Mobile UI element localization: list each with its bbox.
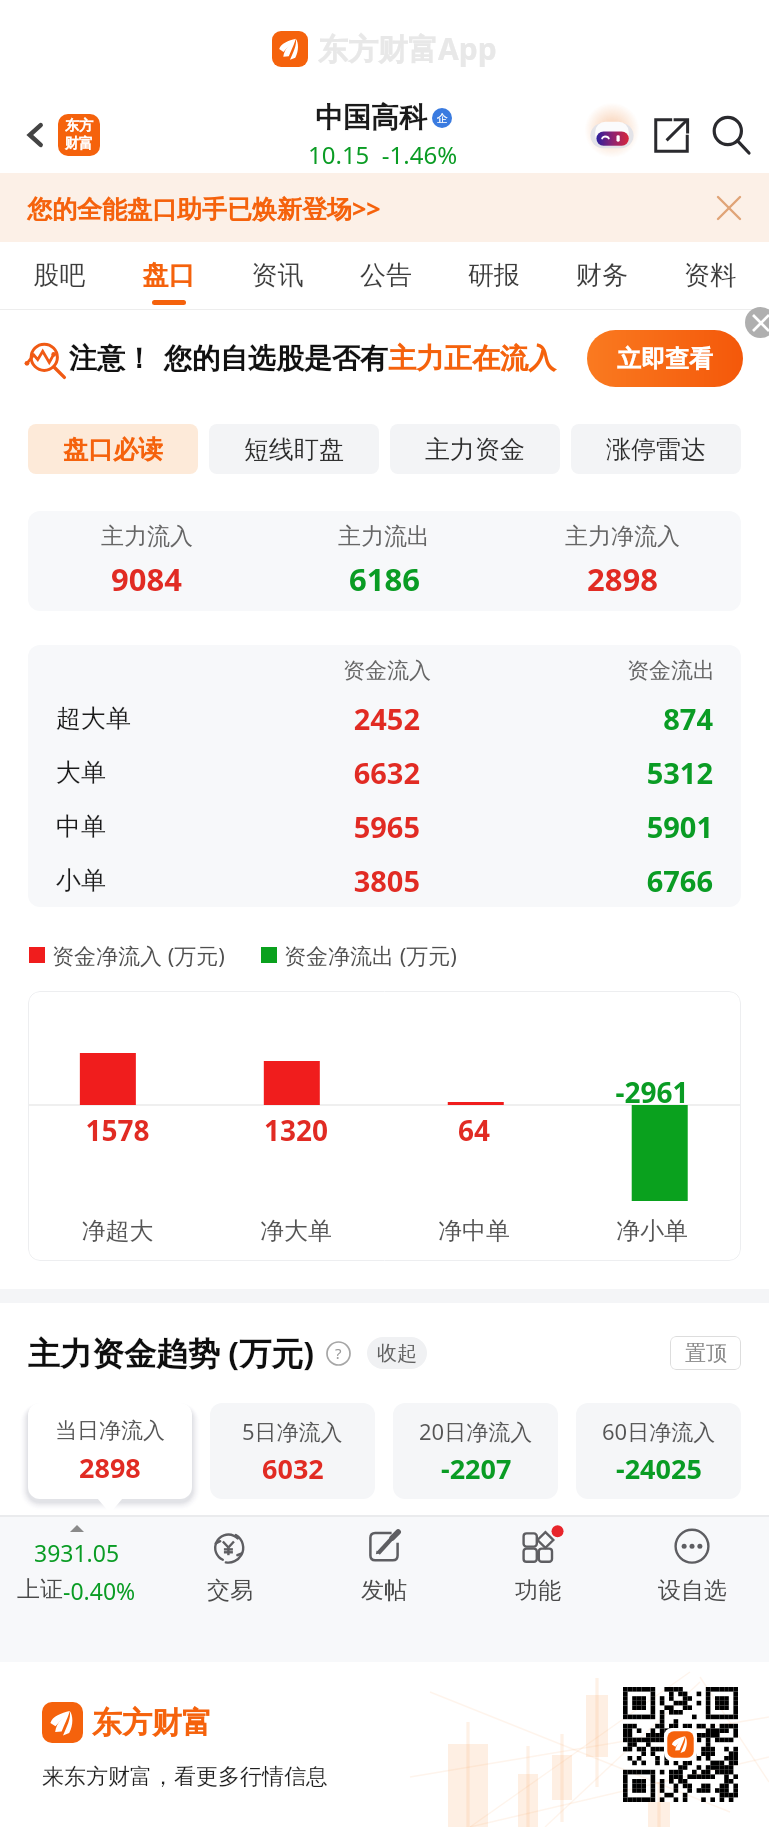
staticText: -2961 bbox=[563, 1073, 741, 1111]
staticText: 5965 bbox=[300, 807, 420, 846]
staticText: 交易 bbox=[207, 1576, 253, 1605]
staticText: 10.15 -1.46% bbox=[308, 138, 458, 171]
staticText: -0.40% bbox=[63, 1575, 136, 1606]
button[interactable]: 盘口 bbox=[114, 242, 223, 310]
staticText: 2452 bbox=[300, 699, 420, 738]
staticText: 当日净流入 bbox=[55, 1417, 165, 1445]
staticText: 小单 bbox=[56, 865, 300, 896]
staticText: 净小单 bbox=[563, 1216, 741, 1246]
button[interactable]: 发帖 bbox=[307, 1517, 461, 1662]
button[interactable]: 5日净流入 bbox=[210, 1403, 375, 1499]
button[interactable]: 设自选 bbox=[615, 1517, 769, 1662]
staticText: 短线盯盘 bbox=[244, 434, 344, 465]
button[interactable]: 3931.05 bbox=[0, 1517, 153, 1662]
button[interactable]: 研报 bbox=[440, 242, 548, 310]
staticText: 立即查看 bbox=[617, 344, 713, 374]
staticText: 研报 bbox=[440, 259, 548, 292]
staticText: 20日净流入 bbox=[419, 1416, 533, 1446]
staticText: 6032 bbox=[262, 1450, 324, 1487]
button[interactable]: 立即查看 bbox=[587, 330, 743, 387]
staticText: 6186 bbox=[349, 558, 420, 600]
staticText: 超大单 bbox=[56, 703, 300, 734]
button[interactable]: 股吧 bbox=[5, 242, 114, 310]
staticText: 资金净流出 (万元) bbox=[284, 940, 457, 970]
staticText: 东方 bbox=[65, 117, 93, 135]
staticText: 资料 bbox=[656, 259, 764, 292]
button[interactable]: Close bbox=[709, 188, 749, 228]
staticText: 3805 bbox=[300, 861, 420, 900]
staticText: 公告 bbox=[332, 259, 440, 292]
staticText: 2898 bbox=[587, 558, 658, 600]
staticText: 设自选 bbox=[658, 1576, 727, 1605]
staticText: 财富 bbox=[65, 135, 93, 153]
staticText: 874 bbox=[420, 699, 713, 738]
staticText: 6632 bbox=[300, 753, 420, 792]
staticText: 置顶 bbox=[685, 1340, 727, 1366]
staticText: 大单 bbox=[56, 757, 300, 788]
staticText: 1320 bbox=[207, 1111, 385, 1149]
staticText: 盘口必读 bbox=[63, 434, 163, 465]
staticText: 1578 bbox=[28, 1111, 207, 1149]
staticText: 您的全能盘口助手已焕新登场>> bbox=[27, 191, 381, 225]
staticText: 企 bbox=[437, 111, 448, 125]
button[interactable]: AI assistant bbox=[582, 105, 642, 165]
button[interactable]: Back bbox=[14, 113, 58, 157]
staticText: 资讯 bbox=[223, 259, 332, 292]
staticText: 5901 bbox=[420, 807, 713, 846]
button[interactable]: 短线盯盘 bbox=[209, 424, 379, 474]
staticText: 中单 bbox=[56, 811, 300, 842]
staticText: 64 bbox=[385, 1111, 563, 1149]
staticText: 上证 bbox=[17, 1575, 63, 1604]
staticText: 3931.05 bbox=[34, 1537, 120, 1568]
staticText: 主力流入 bbox=[101, 522, 193, 551]
staticText: ? bbox=[335, 1343, 342, 1363]
staticText: 5日净流入 bbox=[242, 1416, 343, 1446]
staticText: 注意！ bbox=[69, 341, 153, 376]
button[interactable]: 功能 bbox=[461, 1517, 615, 1662]
staticText: 收起 bbox=[377, 1341, 417, 1366]
button[interactable]: 当日净流入 bbox=[28, 1403, 192, 1499]
button[interactable]: 财务 bbox=[548, 242, 656, 310]
button[interactable]: 您的全能盘口助手已焕新登场>> bbox=[0, 173, 769, 242]
button[interactable]: 资讯 bbox=[223, 242, 332, 310]
button[interactable]: 20日净流入 bbox=[393, 1403, 558, 1499]
staticText: 60日净流入 bbox=[602, 1416, 716, 1446]
button[interactable]: 置顶 bbox=[670, 1336, 741, 1370]
button[interactable]: 交易 bbox=[153, 1517, 307, 1662]
staticText: 来东方财富，看更多行情信息 bbox=[42, 1763, 328, 1791]
staticText: 功能 bbox=[515, 1576, 561, 1605]
staticText: 资金净流入 (万元) bbox=[52, 940, 225, 970]
staticText: 您的自选股是否有 bbox=[164, 341, 388, 376]
button[interactable]: Help bbox=[325, 1340, 351, 1366]
staticText: -2207 bbox=[441, 1450, 512, 1487]
staticText: 财务 bbox=[548, 259, 656, 292]
button[interactable]: 盘口必读 bbox=[28, 424, 198, 474]
staticText: 净大单 bbox=[207, 1216, 385, 1246]
staticText: 主力净流入 bbox=[565, 522, 680, 551]
staticText: 东方财富 bbox=[92, 1704, 212, 1742]
staticText: 6766 bbox=[420, 861, 713, 900]
staticText: 资金流入 bbox=[311, 657, 431, 685]
staticText: 发帖 bbox=[361, 1576, 407, 1605]
staticText: 5312 bbox=[420, 753, 713, 792]
staticText: 中国高科 bbox=[315, 100, 427, 135]
staticText: 东方财富App bbox=[318, 28, 497, 69]
staticText: 涨停雷达 bbox=[606, 434, 706, 465]
staticText: 资金流出 bbox=[422, 657, 715, 685]
button[interactable]: 收起 bbox=[367, 1337, 427, 1369]
staticText: 主力流出 bbox=[338, 522, 430, 551]
button[interactable]: 资料 bbox=[656, 242, 764, 310]
staticText: 9084 bbox=[111, 558, 182, 600]
button[interactable]: Search bbox=[707, 111, 755, 159]
staticText: -24025 bbox=[616, 1450, 702, 1487]
button[interactable]: Share bbox=[647, 111, 695, 159]
button[interactable]: 涨停雷达 bbox=[571, 424, 741, 474]
button[interactable]: 主力资金 bbox=[390, 424, 560, 474]
staticText: 主力资金 bbox=[425, 434, 525, 465]
staticText: 净超大 bbox=[28, 1216, 207, 1246]
staticText: 净中单 bbox=[385, 1216, 563, 1246]
staticText: 股吧 bbox=[5, 259, 114, 292]
button[interactable]: 公告 bbox=[332, 242, 440, 310]
button[interactable]: Close ad bbox=[745, 307, 769, 338]
button[interactable]: 60日净流入 bbox=[576, 1403, 741, 1499]
